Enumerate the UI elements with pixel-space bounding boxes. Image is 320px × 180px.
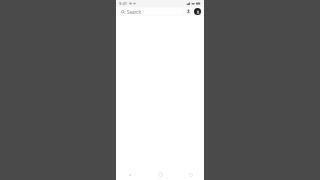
staticText: Search [127, 9, 142, 15]
button[interactable]: Home [156, 170, 165, 179]
button[interactable]: Search [119, 8, 183, 15]
button[interactable]: Account [194, 8, 201, 15]
button[interactable]: Recent apps [186, 170, 195, 179]
button[interactable]: Voice search [185, 8, 192, 15]
staticText: 9:41 [119, 1, 127, 6]
button[interactable]: Back [125, 170, 134, 179]
